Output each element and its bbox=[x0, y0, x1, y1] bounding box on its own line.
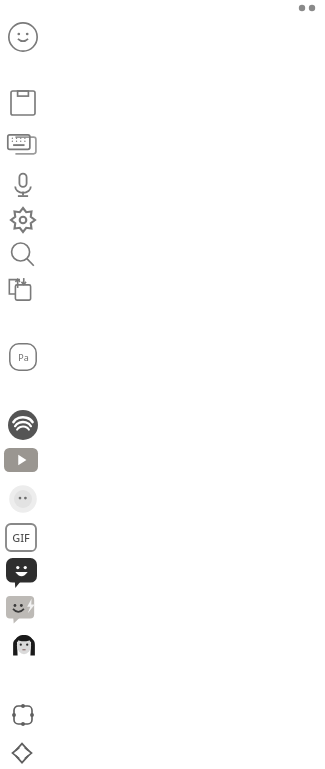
button[interactable]: Settings bbox=[8, 205, 38, 235]
button[interactable]: GIF bbox=[6, 524, 36, 551]
button[interactable]: Spotify bbox=[8, 410, 38, 440]
button[interactable]: Bitmoji bbox=[6, 558, 37, 588]
button[interactable]: Resize bbox=[8, 700, 38, 730]
button[interactable]: Avatar bbox=[8, 628, 40, 660]
button[interactable]: Keyboard bbox=[4, 128, 42, 166]
button[interactable]: Voice input bbox=[8, 170, 38, 200]
button[interactable]: More options bbox=[298, 2, 320, 14]
staticText: GIF bbox=[12, 530, 30, 545]
button[interactable]: Save bbox=[8, 88, 38, 118]
button[interactable]: Sticker bbox=[8, 484, 38, 514]
button[interactable]: Translate bbox=[4, 272, 42, 310]
button[interactable]: Search bbox=[8, 240, 38, 270]
button[interactable]: YouTube bbox=[4, 448, 38, 472]
button[interactable]: Pa sticker bbox=[8, 342, 38, 372]
button[interactable]: Emoji bbox=[8, 22, 38, 52]
button[interactable]: Expand bbox=[8, 738, 36, 766]
staticText: Pa bbox=[18, 351, 29, 363]
button[interactable]: Avatar suggestions bbox=[6, 596, 38, 624]
